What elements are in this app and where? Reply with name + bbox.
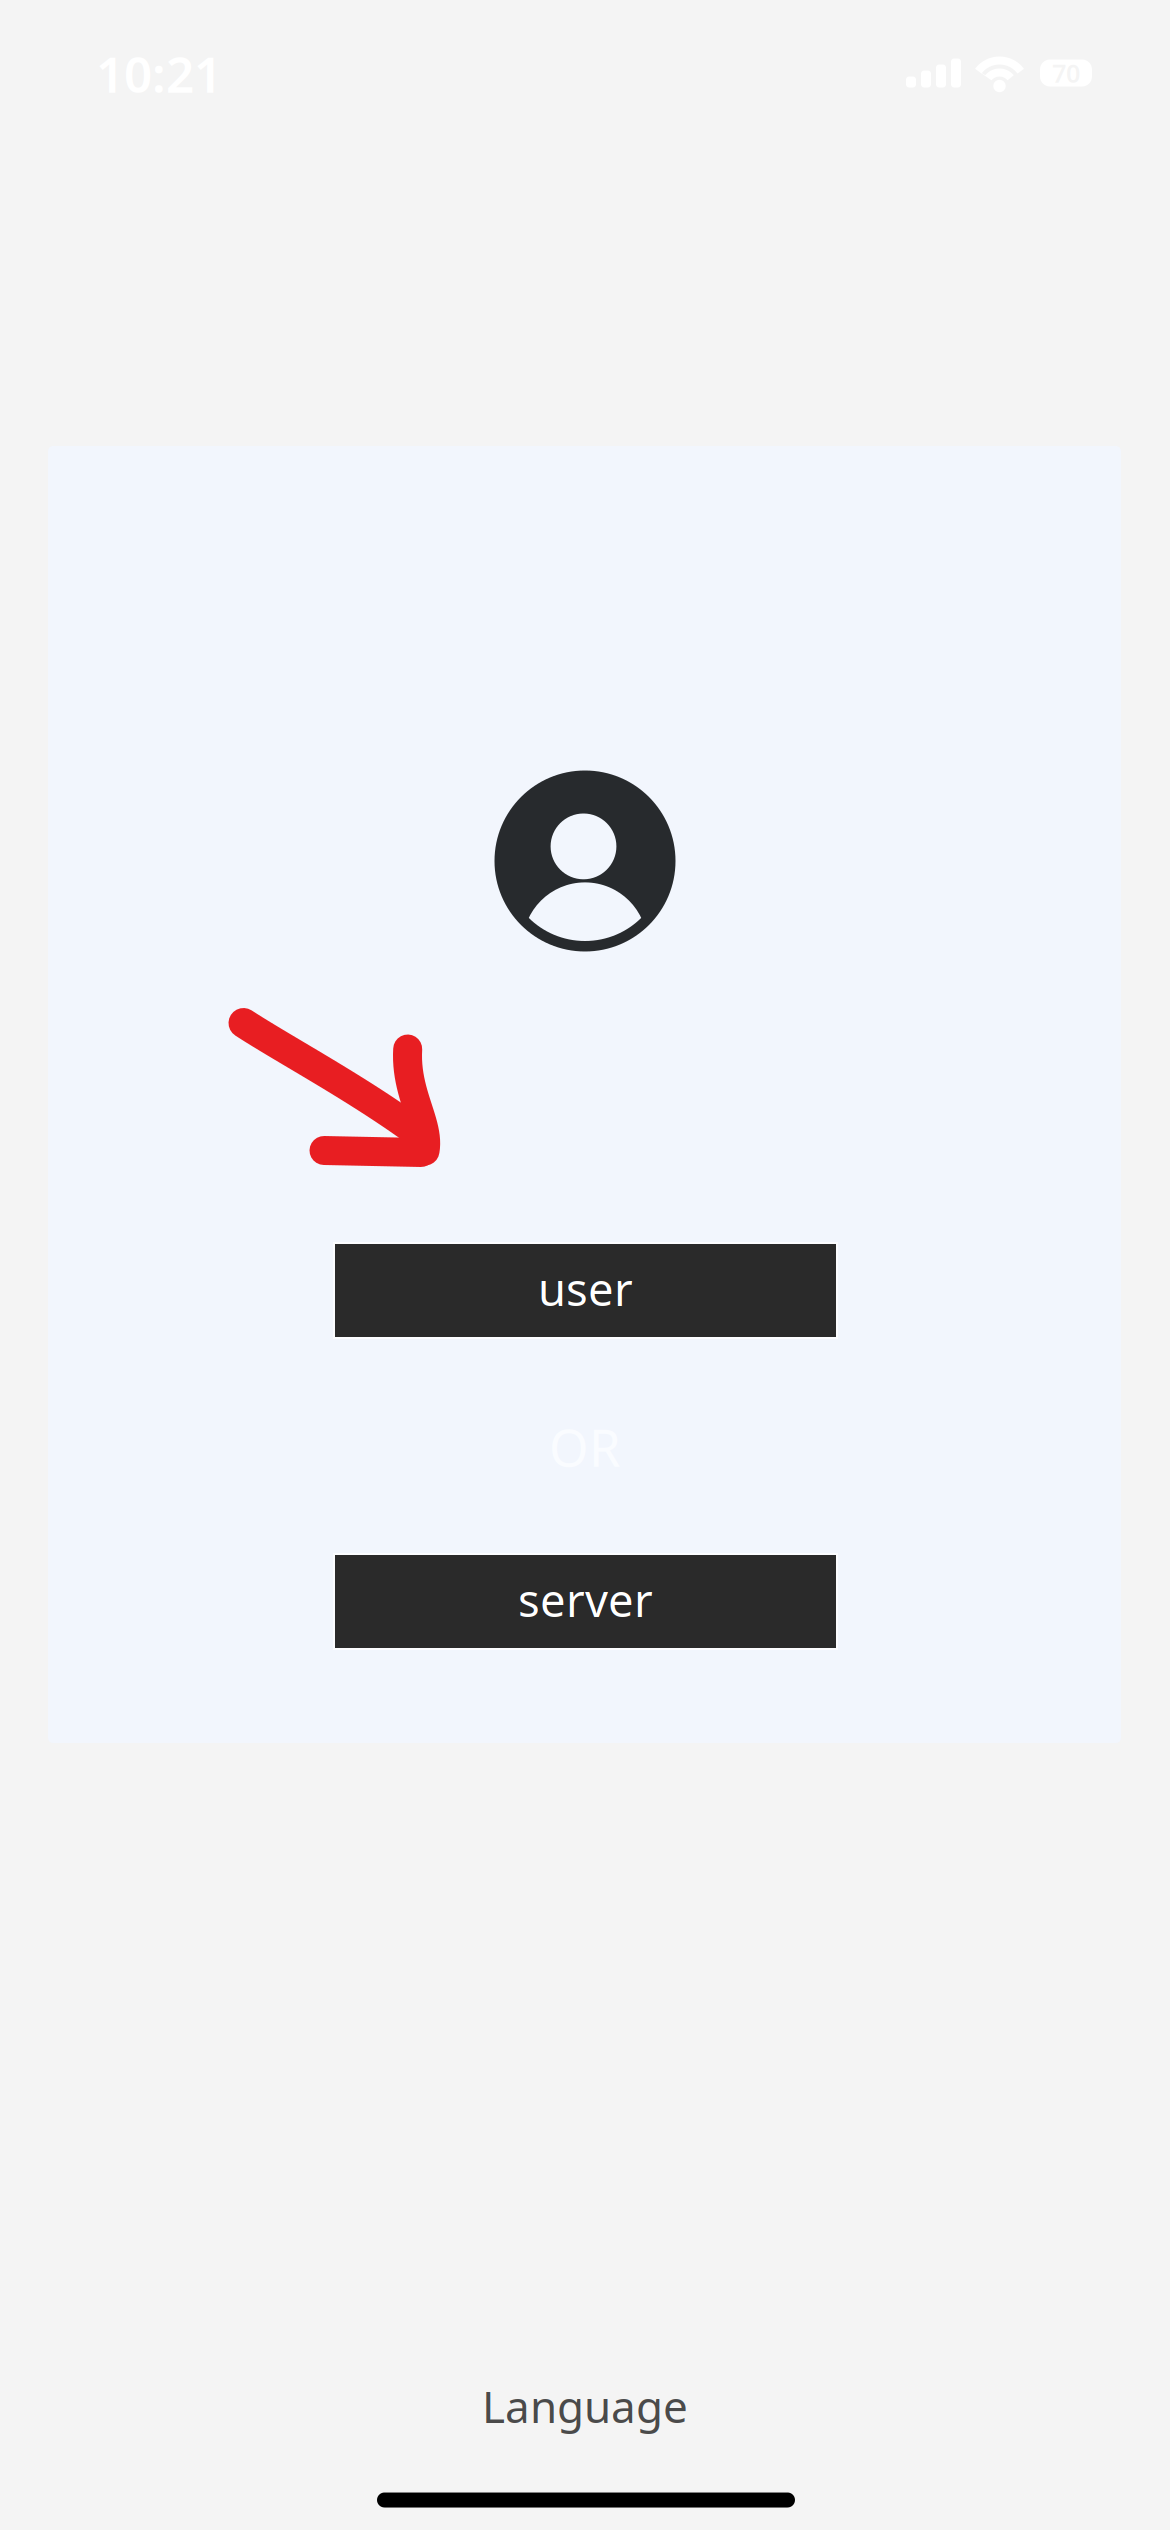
- staticText: user: [538, 1258, 633, 1319]
- staticText: Language: [482, 2377, 688, 2435]
- staticText: 10:21: [96, 41, 222, 106]
- button[interactable]: user: [335, 1244, 836, 1337]
- staticText: server: [518, 1569, 653, 1630]
- button[interactable]: server: [335, 1555, 836, 1648]
- button[interactable]: Language: [465, 2376, 705, 2436]
- staticText: 70: [1052, 56, 1080, 90]
